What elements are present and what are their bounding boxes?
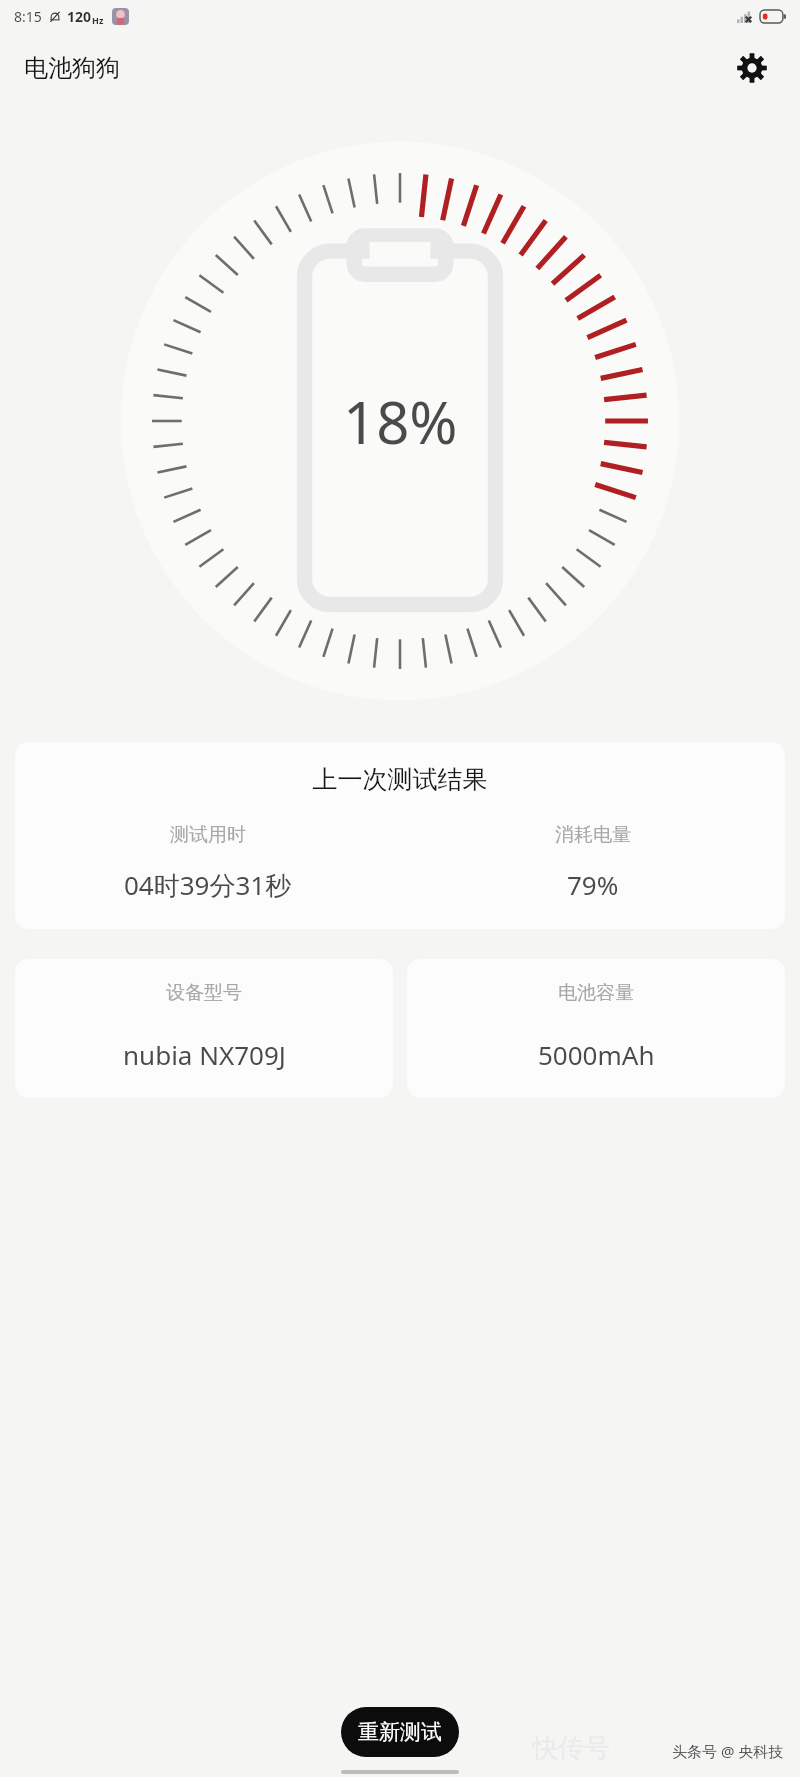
button[interactable]: 上一次测试结果 — [15, 742, 785, 929]
staticText: 上一次测试结果 — [15, 764, 785, 795]
staticText: 设备型号 — [166, 981, 242, 1005]
staticText: 头条号 @ 央科技 — [672, 1741, 784, 1761]
button[interactable]: 电池容量 — [407, 959, 785, 1098]
staticText: 消耗电量 — [555, 823, 631, 847]
staticText: 电池狗狗 — [24, 53, 120, 83]
staticText: 8:15 — [14, 7, 42, 26]
staticText: 5000mAh — [538, 1037, 655, 1072]
staticText: 79% — [567, 867, 619, 902]
staticText: Hz — [92, 14, 104, 26]
staticText: 120 — [67, 7, 92, 26]
staticText: 快传号 — [532, 1732, 610, 1765]
button[interactable]: Settings — [728, 44, 776, 92]
button[interactable]: 设备型号 — [15, 959, 393, 1098]
staticText: 04时39分31秒 — [124, 867, 292, 903]
staticText: 18% — [343, 382, 458, 461]
button[interactable]: 重新测试 — [341, 1707, 459, 1757]
staticText: nubia NX709J — [123, 1037, 286, 1072]
staticText: 测试用时 — [170, 823, 246, 847]
staticText: 重新测试 — [358, 1719, 442, 1745]
staticText: 电池容量 — [558, 981, 634, 1005]
